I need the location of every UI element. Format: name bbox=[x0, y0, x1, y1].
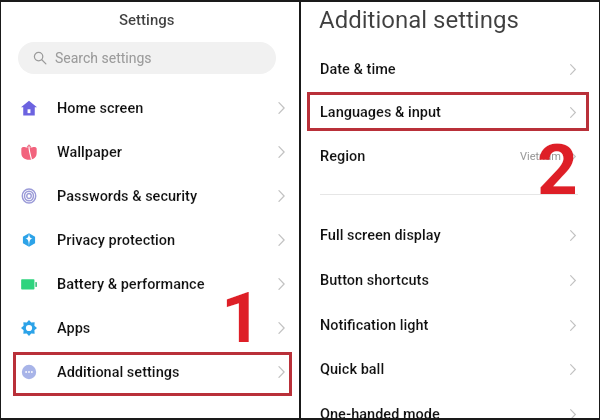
staticText: Vietnam bbox=[520, 150, 561, 163]
staticText: Languages & input bbox=[320, 104, 441, 121]
button[interactable]: Apps bbox=[2, 306, 299, 350]
button[interactable]: Date & time bbox=[302, 47, 598, 92]
staticText: Region bbox=[320, 148, 366, 165]
staticText: Privacy protection bbox=[57, 232, 176, 249]
staticText: Search settings bbox=[55, 50, 152, 66]
button[interactable]: Full screen display bbox=[302, 213, 598, 258]
staticText: Additional settings bbox=[319, 6, 519, 34]
button[interactable]: Quick ball bbox=[302, 347, 598, 392]
staticText: Full screen display bbox=[320, 227, 441, 244]
staticText: Quick ball bbox=[320, 361, 385, 378]
staticText: 2 bbox=[537, 128, 578, 211]
staticText: Passwords & security bbox=[57, 188, 198, 205]
staticText: Battery & performance bbox=[57, 276, 205, 293]
button[interactable]: One-handed mode bbox=[302, 392, 598, 420]
staticText: Notification light bbox=[320, 317, 429, 334]
button[interactable]: Battery & performance bbox=[2, 262, 299, 306]
staticText: Button shortcuts bbox=[320, 272, 429, 289]
button[interactable]: Privacy protection bbox=[2, 218, 299, 262]
staticText: One-handed mode bbox=[320, 406, 440, 420]
button[interactable]: Button shortcuts bbox=[302, 258, 598, 303]
staticText: Wallpaper bbox=[57, 144, 122, 161]
button[interactable]: Passwords & security bbox=[2, 174, 299, 218]
button[interactable]: Additional settings bbox=[2, 350, 299, 394]
button[interactable]: Languages & input bbox=[302, 90, 598, 135]
button[interactable]: Home screen bbox=[2, 86, 299, 130]
staticText: Home screen bbox=[57, 100, 144, 117]
staticText: Apps bbox=[57, 320, 91, 337]
staticText: Date & time bbox=[320, 61, 396, 78]
staticText: Settings bbox=[119, 11, 175, 29]
staticText: 1 bbox=[221, 276, 262, 359]
button[interactable]: Wallpaper bbox=[2, 130, 299, 174]
button[interactable]: Search settings bbox=[18, 42, 276, 74]
staticText: Additional settings bbox=[57, 364, 180, 381]
button[interactable]: Notification light bbox=[302, 303, 598, 348]
button[interactable]: Region bbox=[302, 134, 598, 179]
